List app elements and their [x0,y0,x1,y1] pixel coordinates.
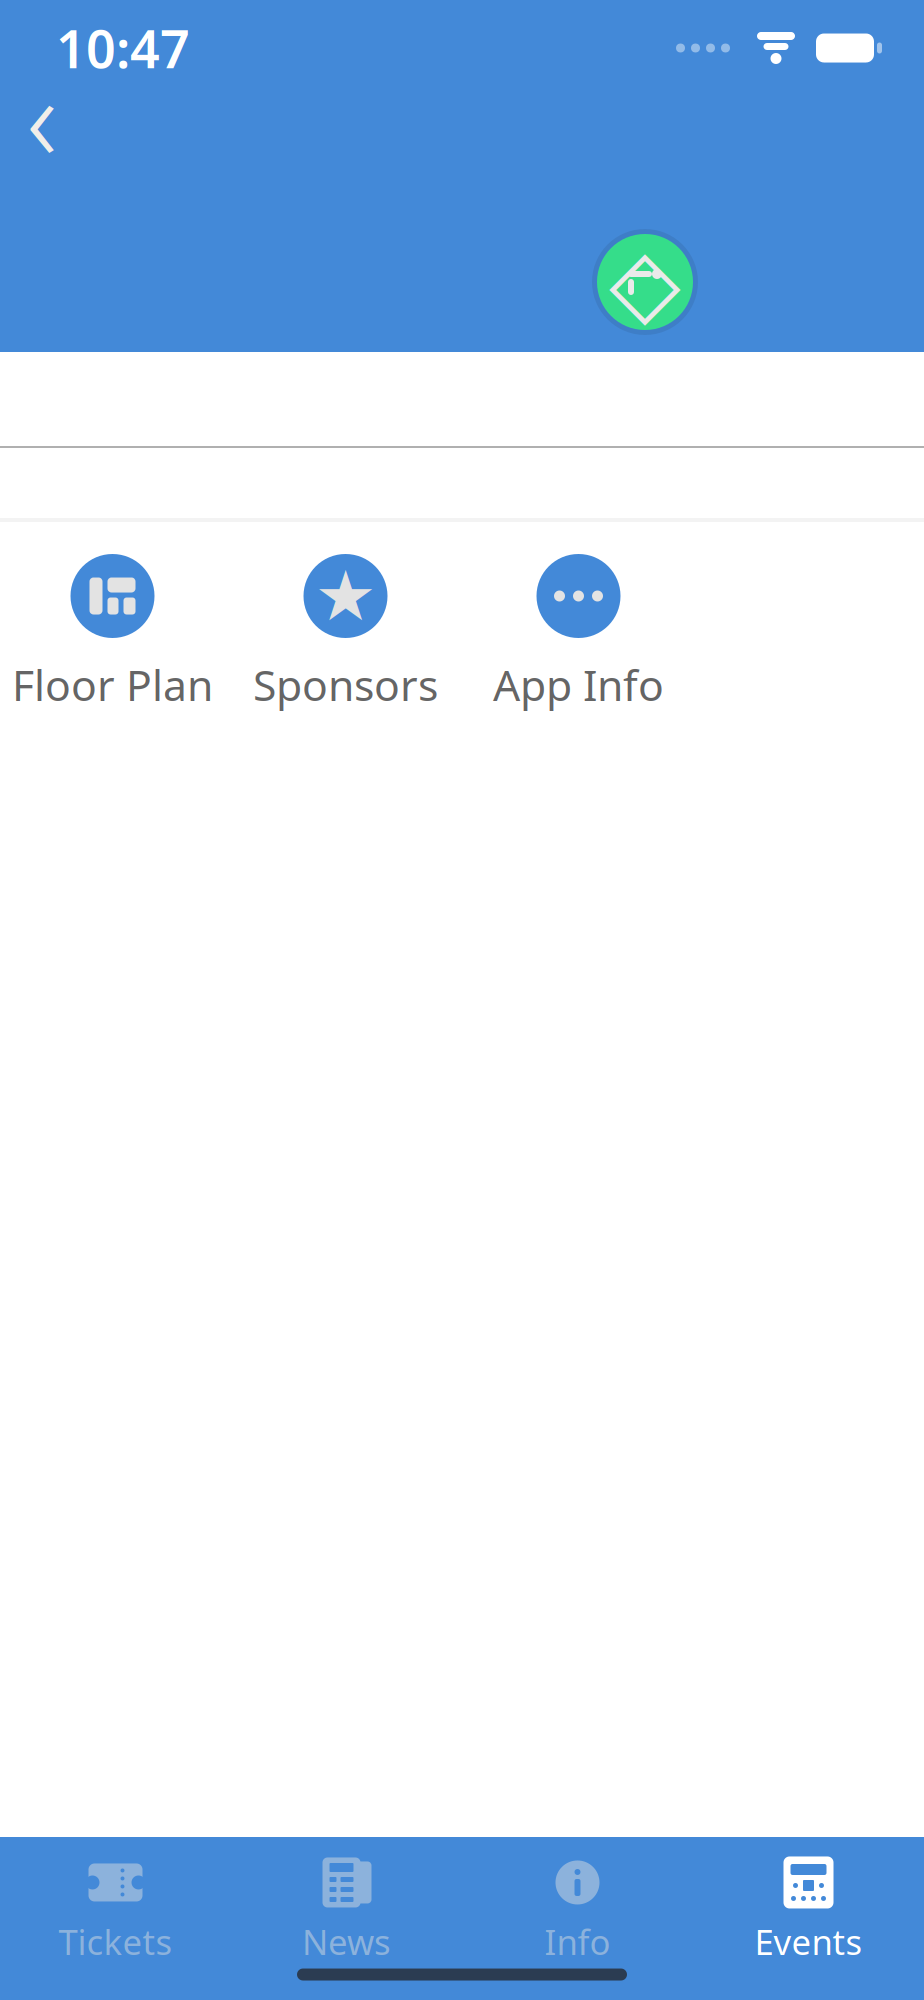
staticText: Info [544,1918,610,1964]
staticText: Floor Plan [12,656,213,713]
staticText: ★ [314,557,376,635]
staticText: ◇ [609,229,681,335]
button[interactable]: Info [462,1852,693,1968]
staticText: News [302,1918,391,1964]
button[interactable]: Tickets [0,1852,231,1968]
staticText: App Info [493,656,664,713]
button[interactable]: News [231,1852,462,1968]
staticText: 10:47 [56,13,190,83]
staticText: Tickets [58,1918,172,1964]
button[interactable]: Floor Plan [0,554,229,721]
button[interactable]: App Info [462,554,695,721]
button[interactable]: ★ [229,554,462,721]
button[interactable]: Directions [592,229,698,335]
button[interactable]: Back [0,72,88,160]
staticText: Events [754,1918,862,1964]
button[interactable]: Events [693,1852,924,1968]
staticText: ‹ [26,38,57,194]
staticText: Sponsors [253,656,438,713]
